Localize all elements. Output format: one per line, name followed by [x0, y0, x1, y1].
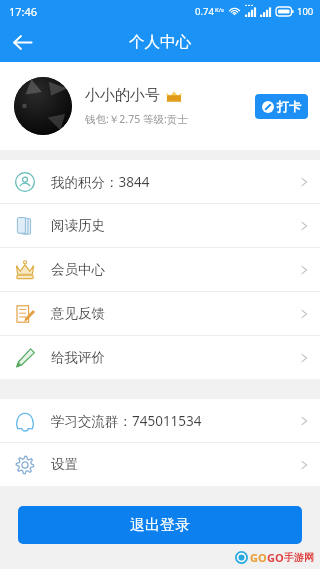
staticText: 打卡: [277, 99, 301, 114]
button[interactable]: 小小的小号: [0, 62, 320, 150]
staticText: 我的积分：3844: [51, 173, 301, 191]
staticText: 学习交流群：745011534: [51, 412, 301, 430]
staticText: 退出登录: [130, 516, 190, 535]
button[interactable]: 打卡: [255, 94, 308, 119]
staticText: 会员中心: [51, 261, 301, 278]
staticText: 给我评价: [51, 349, 301, 366]
staticText: GO: [250, 550, 267, 565]
staticText: K/s: [215, 6, 224, 14]
staticText: GO: [267, 550, 284, 565]
button[interactable]: 退出登录: [18, 506, 302, 544]
staticText: 设置: [51, 456, 301, 473]
button[interactable]: 阅读历史: [0, 204, 320, 248]
staticText: 0.74: [195, 5, 214, 18]
staticText: 阅读历史: [51, 217, 301, 234]
button[interactable]: 给我评价: [0, 336, 320, 379]
button[interactable]: 学习交流群：745011534: [0, 399, 320, 443]
staticText: 意见反馈: [51, 305, 301, 322]
staticText: 钱包:￥2.75 等级:贡士: [85, 112, 188, 126]
staticText: 手游网: [284, 551, 314, 564]
staticText: 17:46: [9, 4, 38, 19]
button[interactable]: 意见反馈: [0, 292, 320, 336]
button[interactable]: 返回: [0, 22, 44, 62]
button[interactable]: 我的积分：3844: [0, 160, 320, 204]
button[interactable]: 会员中心: [0, 248, 320, 292]
staticText: 小小的小号: [85, 86, 160, 105]
staticText: 个人中心: [129, 32, 191, 52]
button[interactable]: 设置: [0, 443, 320, 486]
staticText: 100: [297, 5, 314, 18]
